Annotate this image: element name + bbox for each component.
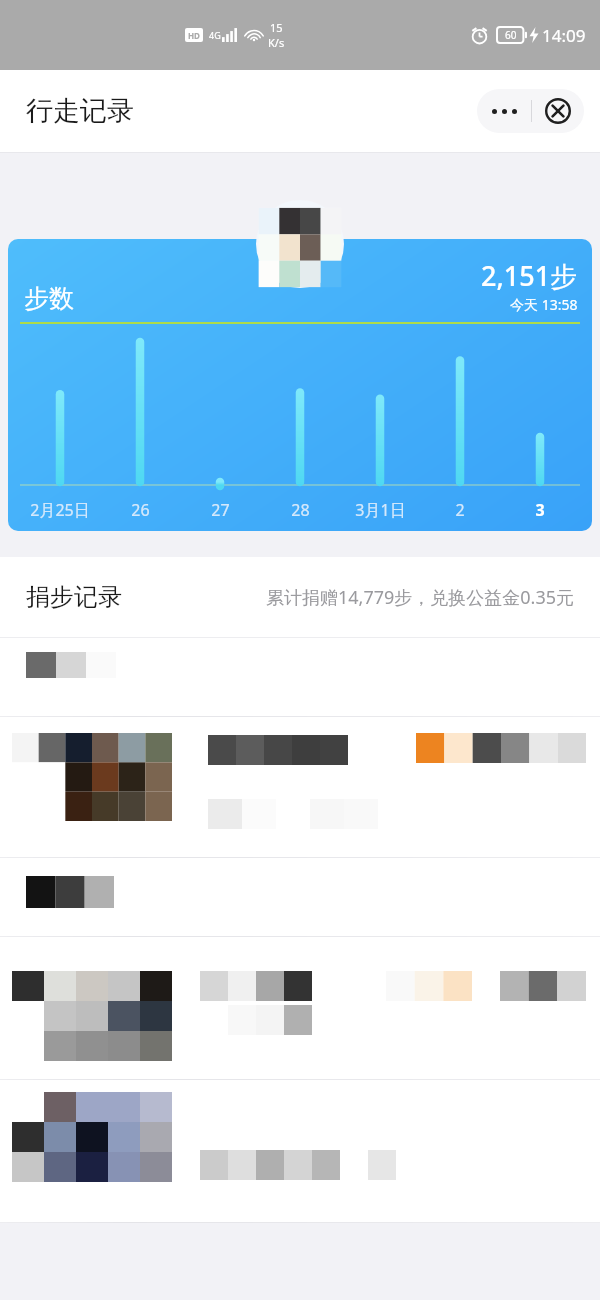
staticText: 27 [211, 499, 230, 521]
staticText: 捐步记录 [26, 582, 122, 612]
staticText: 2,151步 [481, 257, 578, 294]
button[interactable] [0, 1080, 600, 1222]
staticText: 4G [209, 29, 221, 41]
staticText: 3 [535, 499, 545, 521]
staticText: 行走记录 [26, 94, 134, 128]
staticText: 3月1日 [355, 499, 406, 521]
staticText: 60 [505, 28, 517, 42]
staticText: 2月25日 [30, 499, 90, 521]
button[interactable]: Close [532, 89, 584, 133]
button[interactable] [0, 638, 600, 716]
staticText: 累计捐赠14,779步，兑换公益金0.35元 [266, 585, 575, 610]
button[interactable]: More options [477, 89, 531, 133]
button[interactable]: 步数 [8, 239, 592, 531]
staticText: HD [188, 30, 200, 41]
staticText: 步数 [24, 283, 74, 314]
staticText: 14:09 [542, 24, 586, 47]
button[interactable] [0, 937, 600, 1079]
staticText: 26 [131, 499, 150, 521]
staticText: 2 [455, 499, 465, 521]
staticText: 28 [291, 499, 310, 521]
staticText: 今天 13:58 [510, 295, 578, 314]
staticText: 15 [270, 20, 283, 35]
button[interactable] [0, 717, 600, 857]
button[interactable] [0, 858, 600, 936]
staticText: K/s [268, 35, 285, 50]
